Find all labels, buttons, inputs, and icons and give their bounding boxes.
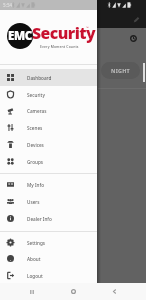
button[interactable]: Back	[106, 283, 123, 300]
staticText: Scenes	[27, 125, 43, 131]
other: Schedule	[130, 35, 137, 42]
staticText: Every Moment Counts	[40, 44, 79, 49]
staticText: Security	[32, 22, 96, 44]
button[interactable]: Home	[65, 283, 82, 300]
button[interactable]: Settings	[0, 234, 97, 251]
staticText: Cameras	[27, 108, 47, 114]
button[interactable]: Edit	[129, 12, 143, 26]
button[interactable]: Recents	[23, 283, 40, 300]
staticText: My Info	[27, 182, 44, 188]
button[interactable]: My Info	[0, 176, 97, 193]
staticText: Settings	[27, 240, 46, 246]
staticText: Security	[27, 92, 45, 98]
button[interactable]: Users	[0, 193, 97, 210]
staticText: Dealer Info	[27, 216, 52, 222]
staticText: 5:54	[3, 2, 13, 8]
button[interactable]: Logout	[0, 267, 97, 284]
button[interactable]: Dashboard	[0, 69, 97, 86]
button[interactable]: Security	[0, 86, 97, 103]
button[interactable]: NIGHT	[101, 62, 140, 79]
button[interactable]: Groups	[0, 153, 97, 170]
button[interactable]: Cameras	[0, 102, 97, 119]
staticText: Logout	[27, 273, 43, 279]
button[interactable]: Scenes	[0, 119, 97, 136]
staticText: Users	[27, 199, 40, 205]
staticText: Devices	[27, 142, 44, 148]
staticText: NIGHT	[111, 67, 130, 74]
button[interactable]: Dealer Info	[0, 210, 97, 227]
staticText: ™	[86, 25, 89, 30]
button[interactable]: Devices	[0, 136, 97, 153]
button[interactable]: About	[0, 250, 97, 267]
staticText: EMC	[8, 28, 32, 44]
staticText: Groups	[27, 159, 44, 165]
staticText: Dashboard	[27, 75, 52, 81]
staticText: About	[27, 256, 41, 262]
